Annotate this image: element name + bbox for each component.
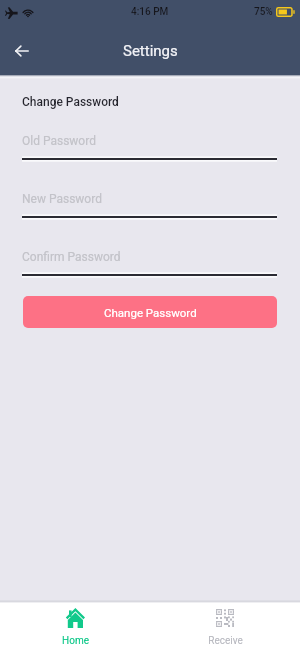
button[interactable]: Back [3,32,41,70]
staticText: 4:16 PM [131,6,169,18]
staticText: Settings [123,42,178,60]
button[interactable]: Receive [150,603,300,647]
button[interactable]: Change Password [23,296,277,328]
staticText: Old Password [22,134,96,148]
staticText: Change Password [104,306,197,319]
other: Receive [215,608,235,628]
staticText: Confirm Password [22,250,121,264]
staticText: Change Password [22,95,119,109]
button[interactable]: Home [0,603,150,647]
staticText: 75% [254,6,273,18]
staticText: New Password [22,192,102,206]
staticText: Home [62,635,89,647]
staticText: Receive [208,635,243,647]
